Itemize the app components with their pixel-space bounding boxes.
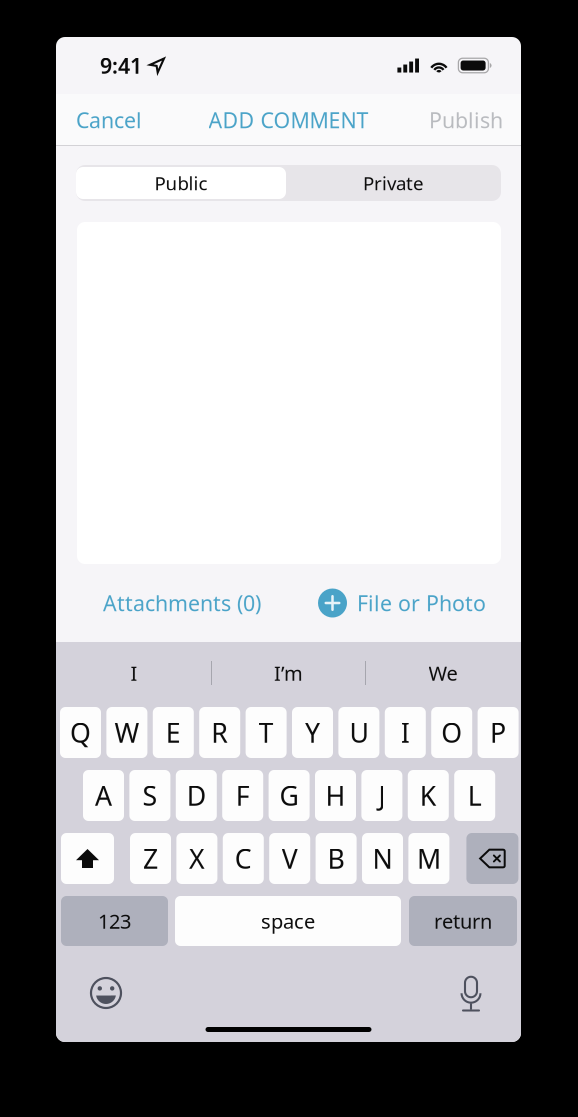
staticText: X	[189, 841, 205, 876]
staticText: return	[434, 908, 492, 934]
staticText: T	[259, 715, 274, 750]
button[interactable]: U	[338, 707, 379, 758]
button[interactable]: Private	[286, 165, 501, 201]
button[interactable]: T	[246, 707, 287, 758]
button[interactable]: We	[366, 647, 520, 699]
button[interactable]: E	[153, 707, 194, 758]
button[interactable]: N	[362, 833, 403, 884]
staticText: S	[142, 778, 157, 813]
staticText: Z	[143, 841, 158, 876]
button[interactable]: B	[316, 833, 357, 884]
staticText: 123	[98, 908, 131, 934]
button[interactable]: L	[454, 770, 495, 821]
staticText: 9:41	[100, 51, 142, 80]
staticText: R	[211, 715, 228, 750]
button[interactable]: R	[199, 707, 240, 758]
staticText: Cancel	[76, 106, 142, 134]
staticText: H	[325, 778, 345, 813]
staticText: O	[441, 715, 462, 750]
staticText: N	[372, 841, 392, 876]
staticText: W	[114, 715, 139, 750]
staticText: File or Photo	[357, 589, 486, 617]
button[interactable]: Q	[60, 707, 101, 758]
staticText: L	[468, 778, 482, 813]
button[interactable]: ADD COMMENT	[208, 94, 368, 146]
button[interactable]: M	[408, 833, 449, 884]
button[interactable]: S	[129, 770, 170, 821]
staticText: U	[349, 715, 368, 750]
button[interactable]: Delete	[466, 833, 518, 884]
button[interactable]: I’m	[212, 647, 365, 699]
button[interactable]: G	[269, 770, 310, 821]
staticText: We	[428, 660, 457, 686]
button[interactable]: I	[385, 707, 426, 758]
staticText: G	[280, 778, 299, 813]
button[interactable]: Dictation	[443, 969, 499, 1017]
staticText: Q	[70, 715, 91, 750]
button[interactable]: Z	[130, 833, 171, 884]
staticText: J	[378, 778, 385, 813]
staticText: A	[95, 778, 112, 813]
button[interactable]: Attachments (0)	[82, 581, 282, 625]
button[interactable]: 123	[61, 896, 168, 946]
staticText: I	[130, 660, 137, 686]
button[interactable]: Public	[76, 165, 286, 201]
button[interactable]: K	[408, 770, 449, 821]
staticText: Y	[305, 715, 320, 750]
button[interactable]: space	[175, 896, 401, 946]
staticText: F	[236, 778, 250, 813]
button[interactable]: H	[315, 770, 356, 821]
staticText: C	[235, 841, 252, 876]
button[interactable]: F	[222, 770, 263, 821]
staticText: B	[328, 841, 345, 876]
staticText: Private	[363, 171, 424, 195]
staticText: D	[187, 778, 206, 813]
button[interactable]: Y	[292, 707, 333, 758]
button[interactable]: V	[269, 833, 310, 884]
staticText: E	[166, 715, 181, 750]
button[interactable]: A	[83, 770, 124, 821]
button[interactable]: W	[106, 707, 147, 758]
button[interactable]: X	[176, 833, 217, 884]
button[interactable]: return	[409, 896, 517, 946]
staticText: I’m	[274, 660, 303, 686]
staticText: I	[401, 715, 410, 750]
staticText: Publish	[429, 106, 503, 134]
staticText: P	[490, 715, 506, 750]
staticText: K	[420, 778, 437, 813]
button[interactable]: File or Photo	[316, 581, 488, 625]
staticText: ADD COMMENT	[208, 106, 368, 134]
button[interactable]: O	[431, 707, 472, 758]
staticText: space	[261, 908, 315, 934]
staticText: Attachments (0)	[103, 589, 261, 617]
button[interactable]: I	[57, 647, 211, 699]
button[interactable]: J	[361, 770, 402, 821]
button[interactable]: D	[176, 770, 217, 821]
button[interactable]: P	[478, 707, 519, 758]
button[interactable]: Emoji keyboard	[78, 969, 134, 1017]
button[interactable]: Cancel	[67, 94, 151, 146]
button[interactable]: C	[223, 833, 264, 884]
button[interactable]: Shift	[61, 833, 114, 884]
staticText: M	[417, 841, 441, 876]
staticText: Public	[154, 171, 207, 195]
staticText: V	[282, 841, 298, 876]
button[interactable]: Publish	[420, 94, 512, 146]
